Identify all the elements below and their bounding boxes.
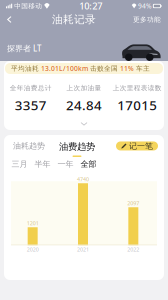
staticText: 11% xyxy=(120,64,134,73)
staticText: 油耗记录 xyxy=(52,13,96,26)
staticText: 半年 xyxy=(34,159,50,169)
button[interactable]: 全部 xyxy=(77,157,100,171)
staticText: 上次里程表读数 xyxy=(113,84,162,92)
staticText: 4740 xyxy=(77,176,89,183)
staticText: 车主 xyxy=(134,64,150,73)
staticText: 平均油耗 xyxy=(11,64,41,73)
staticText: 油耗趋势 xyxy=(13,141,45,151)
staticText: 2097 xyxy=(127,200,139,207)
staticText: 记一笔 xyxy=(129,141,153,151)
button[interactable]: 油费趋势 xyxy=(56,141,98,157)
staticText: 13.01L/100km xyxy=(41,64,88,73)
staticText: 上次加油量 xyxy=(66,84,101,92)
button[interactable]: 返回 xyxy=(0,12,20,27)
staticText: 2022 xyxy=(127,246,139,253)
staticText: 全部 xyxy=(80,159,96,169)
staticText: 3357 xyxy=(15,96,47,114)
button[interactable]: 油耗趋势 xyxy=(10,141,48,155)
button[interactable]: 半年 xyxy=(31,157,54,171)
staticText: 一年 xyxy=(57,159,73,169)
staticText: 2020 xyxy=(27,246,39,253)
button[interactable]: 三月 xyxy=(8,157,31,171)
button[interactable]: 更多功能 xyxy=(128,12,168,27)
staticText: 更多功能 xyxy=(133,15,161,24)
staticText: 17015 xyxy=(117,96,157,114)
staticText: 探界者 LT xyxy=(7,43,41,54)
staticText: 三月 xyxy=(11,159,27,169)
staticText: 94% xyxy=(138,2,152,10)
staticText: 中国移动 xyxy=(14,2,42,10)
staticText: 油费趋势 xyxy=(59,141,95,152)
staticText: 击败全国 xyxy=(88,64,120,73)
staticText: 全年油费总计 xyxy=(10,84,52,92)
button[interactable]: 记一笔 xyxy=(116,141,158,150)
staticText: 1201 xyxy=(27,220,39,227)
staticText: 24.84 xyxy=(66,96,102,114)
staticText: 10:27 xyxy=(79,0,102,12)
button[interactable]: 一年 xyxy=(54,157,77,171)
staticText: 2021 xyxy=(77,246,89,253)
